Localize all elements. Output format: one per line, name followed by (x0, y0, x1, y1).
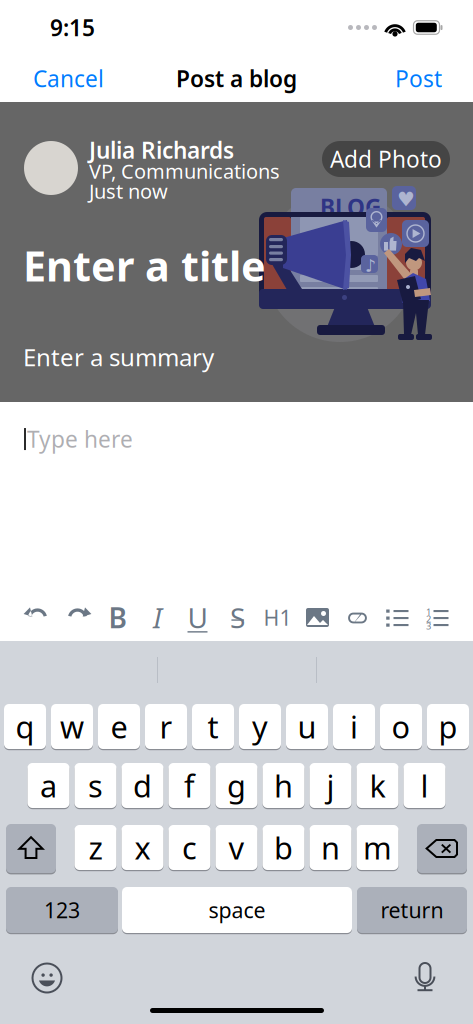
staticText: s (88, 765, 103, 806)
button[interactable]: h (262, 762, 304, 809)
staticText: Type here (27, 424, 133, 454)
staticText: i (350, 706, 358, 747)
staticText: S (230, 599, 245, 636)
staticText: q (15, 706, 34, 747)
button[interactable]: Underline (182, 602, 213, 633)
staticText: l (420, 765, 428, 806)
button[interactable]: c (168, 824, 210, 871)
button[interactable]: r (145, 703, 187, 750)
staticText: r (159, 706, 172, 747)
button[interactable]: b (262, 824, 304, 871)
staticText: p (438, 706, 457, 747)
staticText: j (326, 765, 334, 806)
button[interactable]: x (121, 824, 163, 871)
button[interactable]: Post (379, 56, 473, 100)
staticText: u (297, 706, 316, 747)
staticText: 9:15 (50, 12, 95, 42)
staticText: Post a blog (176, 63, 297, 93)
staticText: f (184, 765, 195, 806)
staticText: g (227, 765, 246, 806)
staticText: Cancel (33, 63, 104, 93)
button[interactable]: k (356, 762, 398, 809)
staticText: d (133, 765, 152, 806)
staticText: Add Photo (330, 144, 442, 174)
staticText: I (153, 599, 162, 636)
button[interactable]: Emoji keyboard (32, 963, 62, 993)
button[interactable]: w (51, 703, 93, 750)
button[interactable]: Bulleted list (382, 602, 413, 633)
button[interactable]: g (215, 762, 257, 809)
staticText: z (88, 827, 102, 868)
button[interactable]: return (357, 886, 467, 934)
staticText: Enter a title (23, 238, 266, 293)
staticText: 1 (426, 606, 431, 618)
staticText: space (208, 896, 265, 924)
staticText: x (134, 827, 150, 868)
staticText: n (321, 827, 340, 868)
button[interactable]: Strikethrough (222, 602, 253, 633)
staticText: k (369, 765, 385, 806)
button[interactable]: d (121, 762, 163, 809)
button[interactable]: Cancel (0, 56, 120, 100)
button[interactable]: j (309, 762, 351, 809)
staticText: 2 (426, 613, 431, 625)
button[interactable]: Insert link (342, 602, 373, 633)
staticText: 3 (426, 620, 431, 632)
button[interactable]: Italic (142, 602, 173, 633)
staticText: o (391, 706, 410, 747)
button[interactable]: s (74, 762, 116, 809)
staticText: v (228, 827, 244, 868)
button[interactable]: space (122, 886, 352, 934)
staticText: VP, Communications (89, 158, 280, 184)
button[interactable]: i (333, 703, 375, 750)
staticText: e (110, 706, 127, 747)
button[interactable]: m (356, 824, 398, 871)
button[interactable]: Dictation (410, 961, 440, 993)
button[interactable]: f (168, 762, 210, 809)
button[interactable]: t (192, 703, 234, 750)
button[interactable]: Add Photo (322, 141, 450, 177)
button[interactable]: Numbered list (422, 602, 453, 633)
button[interactable]: Bold (102, 602, 133, 633)
staticText: t (207, 706, 218, 747)
staticText: Post (395, 63, 442, 93)
staticText: U (187, 599, 207, 636)
button[interactable]: l (403, 762, 445, 809)
button[interactable]: n (309, 824, 351, 871)
button[interactable]: Shift (6, 823, 56, 874)
staticText: return (380, 896, 443, 924)
staticText: c (182, 827, 197, 868)
staticText: H1 (263, 603, 291, 632)
button[interactable]: y (239, 703, 281, 750)
staticText: BLOG (320, 192, 381, 222)
staticText: b (274, 827, 293, 868)
button[interactable]: Insert image (302, 602, 333, 633)
button[interactable]: q (4, 703, 46, 750)
staticText: ♪ (365, 256, 376, 276)
staticText: h (274, 765, 293, 806)
button[interactable]: v (215, 824, 257, 871)
button[interactable]: z (74, 824, 116, 871)
staticText: 123 (44, 896, 80, 924)
button[interactable]: Undo (22, 602, 53, 633)
staticText: w (60, 706, 84, 747)
staticText: Enter a summary (23, 341, 214, 373)
staticText: a (40, 765, 57, 806)
button[interactable]: a (27, 762, 69, 809)
staticText: B (108, 599, 126, 636)
button[interactable]: Redo (62, 602, 93, 633)
staticText: Julia Richards (89, 135, 234, 165)
staticText: ♥ (397, 188, 415, 211)
button[interactable]: p (427, 703, 469, 750)
button[interactable]: Delete (417, 823, 467, 874)
button[interactable]: Heading 1 (262, 602, 293, 633)
staticText: y (252, 706, 268, 747)
staticText: Just now (89, 178, 168, 204)
button[interactable]: e (98, 703, 140, 750)
button[interactable]: o (380, 703, 422, 750)
staticText: m (363, 827, 392, 868)
button[interactable]: 123 (6, 886, 118, 934)
button[interactable]: u (286, 703, 328, 750)
